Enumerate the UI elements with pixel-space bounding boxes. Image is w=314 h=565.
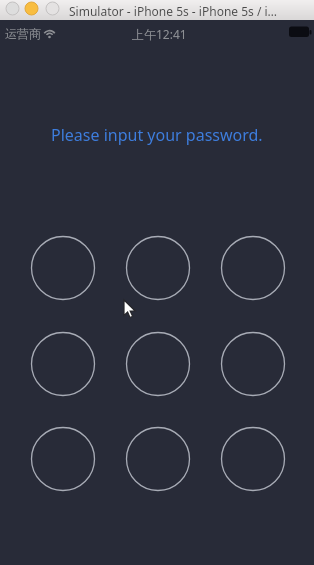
button[interactable] — [126, 236, 190, 300]
button[interactable] — [221, 332, 285, 396]
button[interactable] — [6, 2, 19, 15]
button[interactable] — [46, 2, 59, 15]
staticText: Please input your password. — [51, 124, 263, 146]
button[interactable] — [31, 427, 95, 491]
button[interactable] — [126, 332, 190, 396]
button[interactable] — [31, 332, 95, 396]
button[interactable] — [25, 2, 38, 15]
staticText: Simulator - iPhone 5s - iPhone 5s / i… — [69, 3, 278, 19]
button[interactable] — [221, 236, 285, 300]
button[interactable] — [31, 236, 95, 300]
button[interactable] — [221, 427, 285, 491]
staticText: 运营商 — [5, 26, 41, 41]
button[interactable] — [126, 427, 190, 491]
staticText: 上午12:41 — [132, 26, 187, 42]
